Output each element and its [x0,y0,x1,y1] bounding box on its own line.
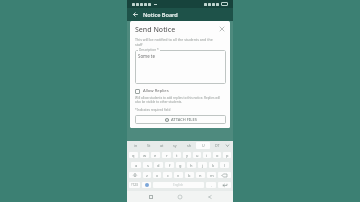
staticText: q [132,153,135,158]
button[interactable]: f [165,162,174,168]
staticText: l [224,163,226,168]
button[interactable]: j [198,162,207,168]
staticText: v [177,173,180,178]
staticText: Notice Board [143,11,178,19]
staticText: e [154,153,157,158]
staticText: z [146,173,148,178]
staticText: x [156,173,159,178]
button[interactable]: o [213,152,221,158]
button[interactable]: ATTACH FILES [135,115,226,124]
button[interactable]: Shift [129,172,141,178]
button[interactable]: U [196,142,210,149]
staticText: b [188,173,191,178]
button[interactable]: More suggestions [224,141,231,150]
button[interactable]: p [223,152,231,158]
staticText: sy [173,143,177,148]
button[interactable]: c [163,172,172,178]
staticText: Description * [139,48,159,52]
button[interactable]: h [187,162,196,168]
staticText: s [147,163,149,168]
button[interactable]: Recents [145,191,157,202]
button[interactable]: y [183,152,191,158]
staticText: d [157,163,160,168]
staticText: U [202,143,205,148]
staticText: u [196,153,199,158]
button[interactable]: Back [204,191,216,202]
staticText: Allow Replies [143,88,169,94]
button[interactable]: Enter [218,182,231,188]
button[interactable]: St [142,142,155,149]
staticText: n [199,173,202,178]
staticText: t [176,153,178,158]
button[interactable]: ?123 [129,182,140,188]
button[interactable]: x [153,172,161,178]
staticText: St [147,143,151,148]
button[interactable]: Backspace [218,172,231,178]
staticText: Send Notice [135,25,176,35]
button[interactable]: at [155,142,168,149]
staticText: g [179,163,182,168]
button[interactable]: w [140,152,149,158]
button[interactable]: e [151,152,160,158]
staticText: f [169,163,171,168]
button[interactable]: Space [153,182,204,188]
staticText: . [211,183,212,188]
button[interactable]: v [174,172,183,178]
button[interactable]: u [193,152,201,158]
staticText: p [226,153,229,158]
staticText: r [166,153,168,158]
button[interactable]: DT [210,142,224,149]
button[interactable]: Allow Replies [135,88,169,94]
button[interactable]: n [196,172,205,178]
staticText: c [167,173,169,178]
button[interactable]: i [203,152,211,158]
staticText: *Indicates required field [135,108,171,112]
staticText: sh [187,143,191,148]
staticText: Some te [138,53,155,59]
staticText: m [210,173,214,178]
staticText: ?123 [131,183,138,187]
button[interactable]: d [154,162,163,168]
staticText: Will allow students to add replies to th… [135,96,226,104]
button[interactable]: l [220,162,229,168]
button[interactable]: b [185,172,194,178]
button[interactable]: g [176,162,185,168]
staticText: DT [215,143,220,148]
staticText: This will be notified to all the student… [135,37,218,47]
button[interactable]: sh [182,142,196,149]
button[interactable]: Close [218,25,226,33]
staticText: w [143,153,147,158]
staticText: at [160,143,164,148]
staticText: y [186,153,189,158]
button[interactable]: z [143,172,151,178]
staticText: i [206,153,208,158]
button[interactable]: s [143,162,152,168]
staticText: English [173,183,184,187]
staticText: o [216,153,219,158]
staticText: k [212,163,215,168]
button[interactable]: r [162,152,171,158]
staticText: j [202,163,204,168]
button[interactable]: in [129,142,142,149]
staticText: in [134,143,138,148]
button[interactable]: t [173,152,181,158]
button[interactable]: a [131,162,141,168]
button[interactable]: sy [168,142,182,149]
button[interactable]: . [206,182,216,188]
button[interactable]: k [209,162,218,168]
button[interactable]: Some te [135,50,226,84]
staticText: a [135,163,138,168]
button[interactable]: q [129,152,138,158]
staticText: h [190,163,193,168]
button[interactable]: Language [142,182,151,188]
button[interactable]: Home [174,191,186,202]
button[interactable]: m [207,172,216,178]
staticText: ATTACH FILES [171,117,197,122]
button[interactable]: Back [131,10,140,19]
